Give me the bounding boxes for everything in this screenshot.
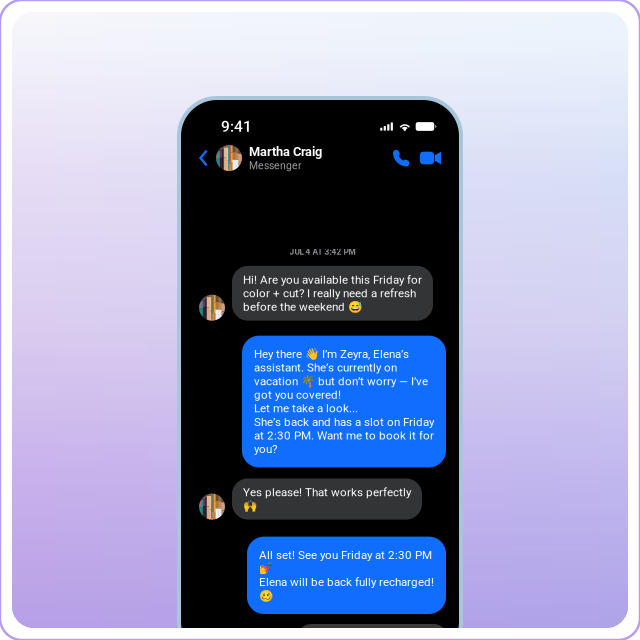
staticText: Hi! Are you available this Friday for <box>243 273 422 286</box>
staticText: 🙌 <box>243 499 257 513</box>
staticText: JUL 4 AT 3:42 PM <box>289 247 355 257</box>
staticText: color + cut? I really need a refresh <box>243 286 416 300</box>
button[interactable]: Call <box>387 144 415 172</box>
staticText: assistant. She’s currently on <box>254 361 397 374</box>
staticText: Messenger <box>249 160 302 172</box>
button[interactable]: Aa <box>298 624 447 640</box>
staticText: at 2:30 PM. Want me to book it for <box>254 429 434 442</box>
staticText: Yes please! That works perfectly <box>243 485 411 499</box>
staticText: Hey there 👋 I’m Zeyra, Elena’s <box>254 347 409 361</box>
staticText: 💅 <box>259 562 273 575</box>
button[interactable]: More <box>193 628 220 640</box>
staticText: She’s back and has a slot on Friday <box>254 415 434 429</box>
button[interactable]: Video call <box>415 145 446 171</box>
button[interactable]: Back <box>191 141 216 175</box>
button[interactable]: Photos <box>247 629 272 640</box>
staticText: Elena will be back fully recharged! <box>259 575 434 589</box>
staticText: 9:41 <box>221 117 252 135</box>
staticText: Let me take a look... <box>254 402 358 415</box>
staticText: Martha Craig <box>249 144 322 159</box>
staticText: All set! See you Friday at 2:30 PM <box>259 548 432 562</box>
staticText: Aa <box>309 629 324 640</box>
staticText: vacation 🌴 but don’t worry — I’ve <box>254 374 428 388</box>
staticText: you? <box>254 442 277 456</box>
staticText: 🥴 <box>259 589 273 602</box>
button[interactable]: Voice message <box>272 629 293 640</box>
staticText: before the weekend 😅 <box>243 300 362 314</box>
staticText: got you covered! <box>254 388 341 402</box>
button[interactable]: Camera <box>220 630 247 640</box>
